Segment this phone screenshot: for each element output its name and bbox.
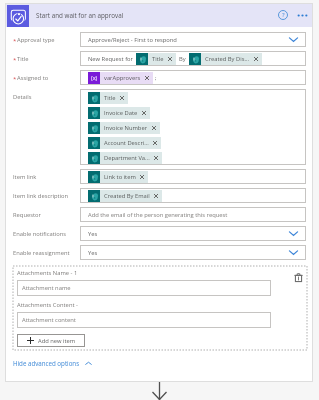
button[interactable]: Department Va... [88,152,162,164]
staticText: Hide advanced options [13,359,80,367]
staticText: Approve/Reject - First to respond [88,36,177,44]
staticText: * [13,75,17,83]
staticText: Yes [88,230,98,238]
staticText: * [13,56,17,64]
button[interactable]: Invoice Date [88,107,150,119]
staticText: Attachment content [22,316,76,324]
staticText: Attachments Content - [17,301,78,309]
staticText: Approval type [17,36,55,44]
button[interactable]: Hide advanced options [13,359,92,367]
staticText: Created By Dis... [205,55,250,63]
button[interactable]: (x) [80,70,306,85]
button[interactable]: Yes [80,245,306,260]
button[interactable]: Title [88,92,128,104]
button[interactable]: Link to item [88,171,148,183]
button[interactable]: Yes [80,226,306,241]
button[interactable]: Help [275,7,291,23]
staticText: * [13,37,17,45]
button[interactable]: Delete [294,273,303,282]
staticText: Title [152,55,164,63]
button[interactable]: Created By Email [88,190,162,202]
button[interactable]: Title [136,53,176,65]
button[interactable]: Start and wait for an approval [5,3,313,27]
staticText: Account Descri... [104,139,149,147]
staticText: Invoice Number [104,124,148,132]
staticText: Add the email of the person generating t… [88,211,228,219]
staticText: Add new item [38,337,76,345]
button[interactable]: Add the email of the person generating t… [80,207,306,222]
staticText: Item link [13,173,37,181]
staticText: Invoice Date [104,109,138,117]
button[interactable]: Add new item [17,334,85,347]
button[interactable]: (x) [88,72,153,84]
button[interactable]: New Request for [80,51,306,66]
button[interactable]: Invoice Number [88,122,160,134]
staticText: ? [282,11,285,19]
button[interactable]: Created By Dis... [189,53,262,65]
button[interactable]: Created By Email [80,188,306,203]
staticText: Assigned to [17,74,49,82]
button[interactable]: Approve/Reject - First to respond [80,32,306,47]
staticText: New Request for [88,55,133,63]
staticText: Details [13,93,32,101]
staticText: Enable reassignment [13,249,70,257]
button[interactable]: Title [80,89,306,165]
staticText: ; [155,74,157,82]
staticText: Item link description [13,192,69,200]
button[interactable]: Account Descri... [88,137,161,149]
staticText: (x) [91,74,98,82]
staticText: By [179,55,186,63]
staticText: Created By Email [104,192,150,200]
staticText: Attachment name [22,284,71,292]
button[interactable]: Link to item [80,169,306,184]
staticText: Attachments Name - 1 [17,269,78,277]
button[interactable]: Attachment name [17,280,271,296]
staticText: Title [104,94,116,102]
button[interactable]: More options [294,7,310,23]
button[interactable]: Attachment content [17,312,271,328]
staticText: Requestor [13,211,41,219]
staticText: Department Va... [104,154,150,162]
staticText: Link to item [104,173,136,181]
staticText: Enable notifications [13,230,67,238]
staticText: varApprovers [104,74,141,82]
staticText: Title [17,55,29,63]
staticText: Yes [88,249,98,257]
staticText: Start and wait for an approval [36,11,124,20]
